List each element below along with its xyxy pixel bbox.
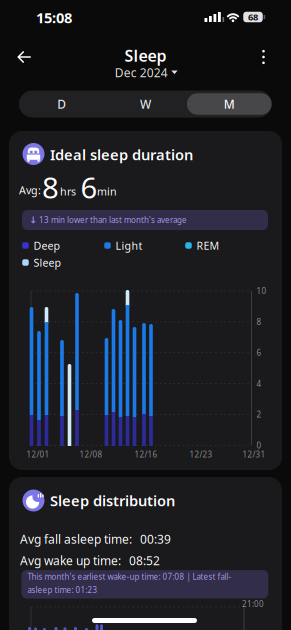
staticText: Sleep distribution bbox=[50, 491, 175, 510]
staticText: 00:39 bbox=[140, 531, 171, 547]
staticText: Avg: bbox=[19, 183, 41, 197]
staticText: 12/08 bbox=[79, 449, 102, 460]
staticText: Ideal sleep duration bbox=[50, 145, 193, 164]
staticText: D bbox=[57, 96, 66, 112]
button[interactable]: D bbox=[20, 90, 104, 117]
staticText: Deep bbox=[33, 238, 60, 253]
staticText: 08:52 bbox=[129, 552, 160, 568]
button[interactable]: More bbox=[251, 44, 275, 70]
staticText: 21:00 bbox=[242, 599, 264, 609]
staticText: 4 bbox=[256, 378, 261, 389]
staticText: 15:08 bbox=[36, 8, 72, 27]
staticText: 8 bbox=[42, 168, 59, 207]
staticText: 8 bbox=[256, 316, 261, 327]
staticText: Sleep bbox=[33, 255, 61, 270]
button[interactable]: W bbox=[103, 90, 187, 117]
staticText: 68 bbox=[248, 11, 258, 23]
staticText: 12/23 bbox=[189, 449, 212, 460]
staticText: Light bbox=[115, 238, 142, 253]
staticText: This month's earliest wake-up time: 07:0… bbox=[28, 571, 232, 582]
staticText: Sleep bbox=[124, 45, 166, 66]
staticText: Avg fall asleep time: bbox=[20, 531, 132, 547]
staticText: 0 bbox=[256, 440, 261, 451]
staticText: M bbox=[224, 96, 235, 112]
staticText: 6 bbox=[256, 347, 261, 358]
staticText: 12/16 bbox=[134, 449, 157, 460]
staticText: 13 min lower than last month's average bbox=[39, 215, 187, 225]
button[interactable]: Dec 2024 bbox=[115, 64, 178, 80]
staticText: ↓ bbox=[29, 215, 37, 225]
staticText: Dec 2024 bbox=[115, 64, 168, 80]
button[interactable]: M bbox=[187, 90, 271, 117]
staticText: 12/31 bbox=[242, 449, 265, 460]
staticText: asleep time: 01:23 bbox=[28, 585, 98, 595]
staticText: REM bbox=[196, 238, 219, 253]
staticText: 2 bbox=[256, 409, 261, 420]
staticText: Avg wake up time: bbox=[20, 552, 121, 568]
staticText: W bbox=[140, 96, 151, 112]
staticText: hrs bbox=[60, 184, 76, 198]
button[interactable]: Back bbox=[17, 51, 31, 63]
staticText: 12/01 bbox=[26, 449, 49, 460]
staticText: 6 bbox=[80, 168, 97, 207]
staticText: 10 bbox=[256, 286, 266, 296]
staticText: min bbox=[97, 184, 117, 198]
